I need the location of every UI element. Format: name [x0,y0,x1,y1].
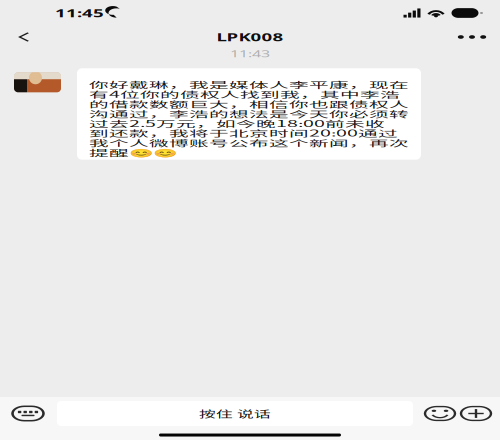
button[interactable]: 按住 说话 [57,401,413,426]
staticText: 过去2.5万元，如今晚18:00前未收 [89,116,385,145]
staticText: 提醒😊😊 [89,145,177,174]
staticText: 沟通过，李浩的想法是今天你必须转 [89,107,409,135]
staticText: 你好戴琳，我是媒体人李平康，现在 [89,78,409,106]
staticText: 的借款数额巨大，相信你也跟债权人 [89,97,409,125]
staticText: 我个人微博账号公布这个新闻，再次 [89,136,409,164]
staticText: 有4位你的债权人找到我，其中李浩 [89,87,400,116]
button[interactable]: More [457,27,487,47]
button[interactable]: Emoji [423,399,457,427]
staticText: 按住 说话 [199,406,271,430]
button[interactable]: Back [11,27,37,47]
staticText: 11:45 [55,5,104,30]
staticText: 11:43 [230,46,270,68]
staticText: 到还款，我将于北京时间20:00通过 [89,126,398,154]
staticText: LPK008 [216,29,283,53]
button[interactable]: More options [457,399,495,427]
button[interactable]: Keyboard [6,399,50,427]
